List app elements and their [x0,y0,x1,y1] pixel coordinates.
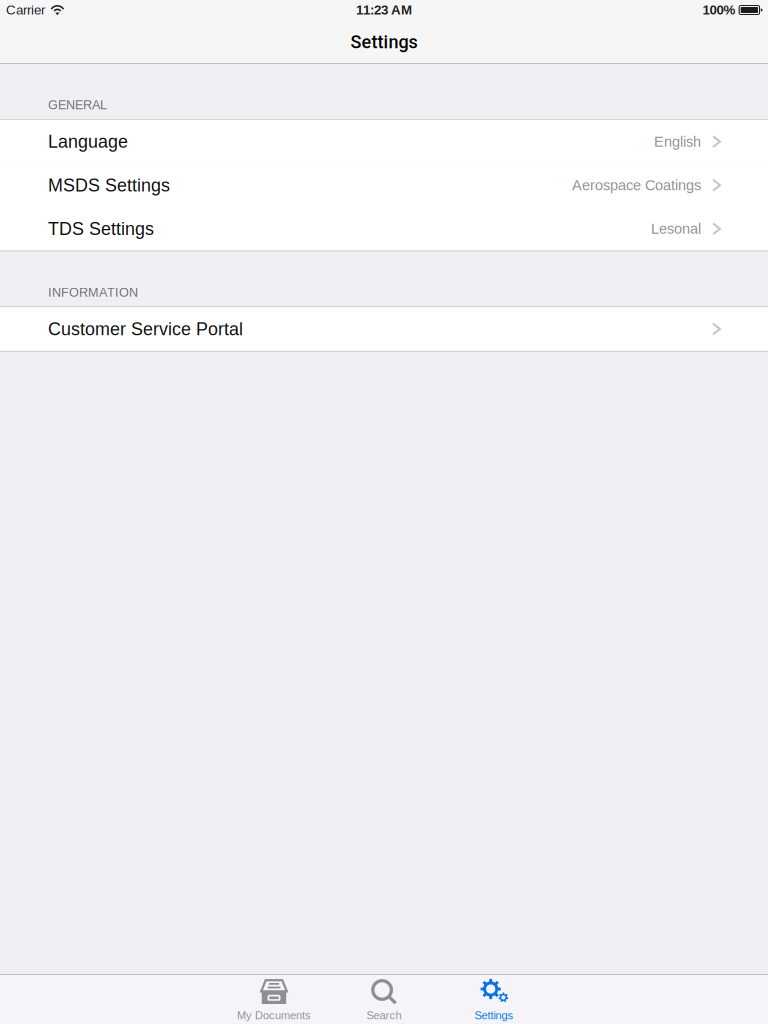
button[interactable]: Customer Service Portal [0,307,768,351]
staticText: 11:23 AM [356,3,412,17]
button[interactable]: My Documents [219,974,329,1024]
staticText: Customer Service Portal [48,319,243,339]
staticText: Settings [474,1009,513,1021]
button[interactable]: MSDS Settings [0,163,768,207]
staticText: Carrier [6,3,45,17]
button[interactable]: TDS Settings [0,207,768,251]
staticText: Language [48,132,128,152]
staticText: Lesonal [651,221,701,237]
staticText: Aerospace Coatings [572,177,701,193]
staticText: Search [366,1009,401,1021]
staticText: INFORMATION [48,285,138,299]
staticText: Settings [350,31,417,53]
staticText: 100% [702,3,735,17]
staticText: My Documents [237,1009,311,1021]
button[interactable]: Search [329,974,439,1024]
button[interactable]: Settings [439,974,549,1024]
staticText: GENERAL [48,98,107,112]
staticText: MSDS Settings [48,175,170,195]
staticText: English [654,133,701,150]
button[interactable]: Language [0,120,768,163]
staticText: TDS Settings [48,219,154,239]
